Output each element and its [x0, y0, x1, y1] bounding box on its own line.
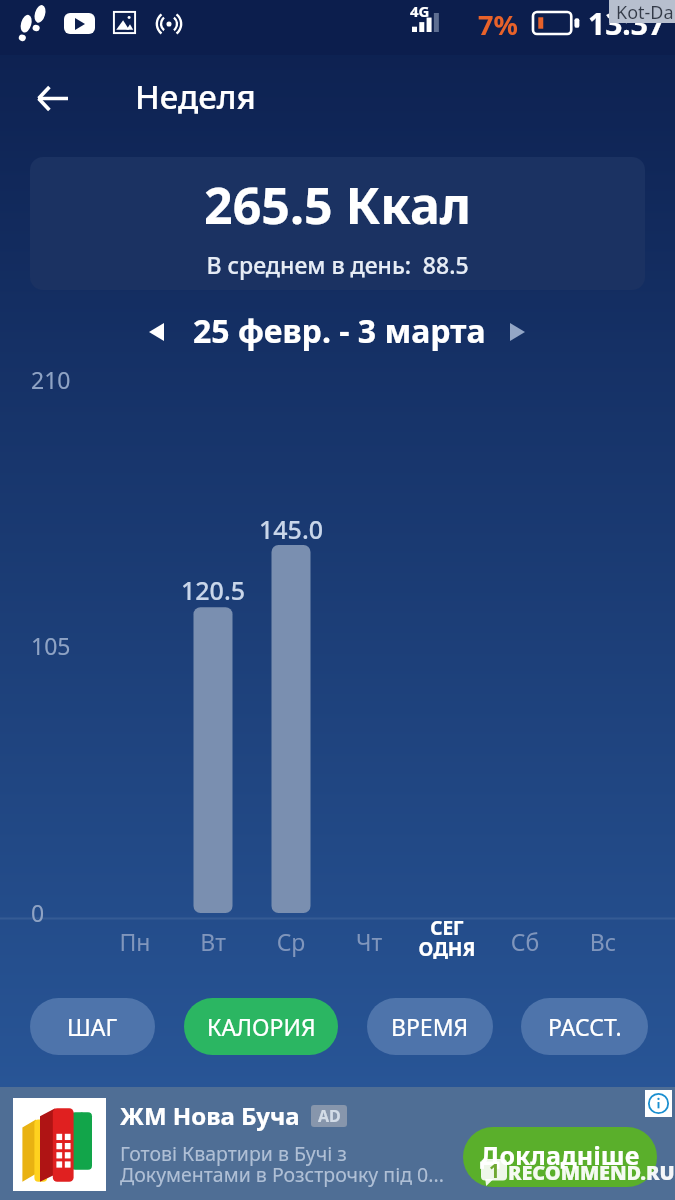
staticText: КАЛОРИЯ	[207, 1011, 316, 1042]
staticText: 1	[489, 1158, 500, 1184]
button[interactable]: Вт 120.5	[174, 380, 252, 955]
staticText: Документами в Розстрочку під 0...	[120, 1161, 444, 1188]
button[interactable]: Next week	[495, 310, 539, 354]
button[interactable]: РАССТ.	[521, 998, 648, 1055]
button[interactable]: ЖМ Нова Буча	[0, 1087, 675, 1200]
staticText: 4G	[410, 1, 430, 21]
staticText: ВРЕМЯ	[391, 1011, 469, 1042]
staticText: Неделя	[135, 74, 256, 119]
staticText: Чт	[329, 926, 409, 957]
staticText: 0	[31, 897, 45, 928]
button[interactable]: ШАГ	[30, 998, 155, 1055]
staticText: Вс	[563, 926, 643, 957]
staticText: Готові Квартири в Бучі з	[120, 1140, 347, 1167]
button[interactable]: Previous week	[134, 310, 178, 354]
staticText: ЖМ Нова Буча	[120, 1099, 300, 1132]
staticText: 120.5	[163, 573, 263, 607]
staticText: Ср	[251, 926, 331, 957]
staticText: 13:37	[588, 3, 666, 44]
staticText: СЕГ ОДНЯ	[407, 915, 487, 961]
staticText: Докладніше	[480, 1138, 640, 1172]
staticText: Сб	[485, 926, 565, 957]
button[interactable]: Back	[22, 68, 82, 128]
staticText: 210	[31, 364, 71, 395]
staticText: РАССТ.	[548, 1011, 622, 1042]
button[interactable]: Ad info	[645, 1090, 672, 1117]
staticText: ШАГ	[67, 1011, 118, 1042]
staticText: 7%	[478, 6, 518, 43]
button[interactable]: КАЛОРИЯ	[184, 998, 338, 1055]
staticText: В среднем в день: 88.5	[30, 249, 645, 280]
staticText: 25 февр. - 3 марта	[193, 309, 486, 353]
staticText: AD	[318, 1105, 341, 1127]
button[interactable]: 265.5 Ккал	[30, 157, 645, 290]
button[interactable]: Сб	[486, 380, 564, 955]
staticText: Пн	[95, 926, 175, 957]
staticText: RECOMMEND.RU	[508, 1159, 675, 1186]
staticText: 105	[31, 630, 71, 661]
button[interactable]: Пн	[96, 380, 174, 955]
button[interactable]: ВРЕМЯ	[367, 998, 493, 1055]
staticText: Вт	[173, 926, 253, 957]
button[interactable]: Чт	[330, 380, 408, 955]
staticText: 145.0	[241, 512, 341, 546]
button[interactable]: Вс	[564, 380, 642, 955]
button[interactable]: Сегодня	[408, 380, 486, 955]
button[interactable]: Ср 145.0	[252, 380, 330, 955]
staticText: 265.5 Ккал	[30, 171, 645, 239]
button[interactable]: Докладніше	[463, 1127, 657, 1187]
staticText: Kot-Da	[616, 0, 674, 23]
